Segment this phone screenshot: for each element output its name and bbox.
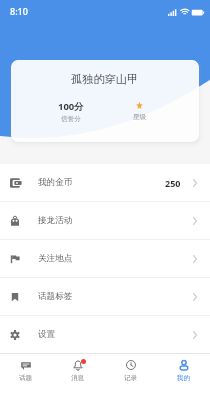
staticText: 孤独的穿山甲 xyxy=(71,72,139,86)
button[interactable]: 话题标签 xyxy=(0,278,210,315)
button[interactable]: 关注地点 xyxy=(0,240,210,277)
button[interactable]: 我的 xyxy=(157,354,210,388)
staticText: 记录 xyxy=(124,374,138,382)
button[interactable]: 记录 xyxy=(104,354,157,388)
staticText: 接龙活动 xyxy=(38,215,73,226)
staticText: 设置 xyxy=(38,329,56,340)
staticText: 我的金币 xyxy=(38,177,73,188)
staticText: 关注地点 xyxy=(38,253,73,264)
staticText: 话题标签 xyxy=(38,291,73,302)
staticText: 250 xyxy=(165,177,181,189)
staticText: 星级 xyxy=(133,113,147,121)
button[interactable]: 消息 xyxy=(52,354,104,388)
button[interactable]: 设置 xyxy=(0,316,210,353)
staticText: 信誉分 xyxy=(61,115,81,123)
button[interactable]: 我的金币 xyxy=(0,164,210,201)
button[interactable]: 话题 xyxy=(0,354,52,388)
button[interactable]: 接龙活动 xyxy=(0,202,210,239)
staticText: 我的 xyxy=(177,374,191,382)
staticText: 8:10 xyxy=(10,5,28,17)
staticText: 100分 xyxy=(58,100,84,113)
staticText: 话题 xyxy=(19,374,33,382)
staticText: 消息 xyxy=(71,374,85,382)
